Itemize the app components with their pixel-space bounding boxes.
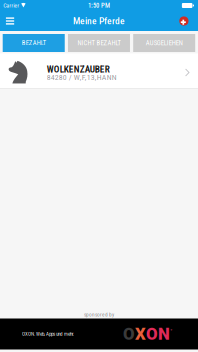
button[interactable]: Menu xyxy=(0,12,21,30)
staticText: BEZAHLT xyxy=(22,39,46,47)
staticText: AUSGELIEHEN xyxy=(146,39,183,47)
staticText: Carrier xyxy=(3,2,19,9)
staticText: NICHT BEZAHLT xyxy=(77,39,120,47)
staticText: ° xyxy=(170,328,172,334)
staticText: 1:50 PM xyxy=(88,2,110,9)
button[interactable]: Add horse xyxy=(174,12,198,30)
button[interactable]: OXON. Web, Apps und mehr. xyxy=(0,318,198,349)
staticText: N xyxy=(158,324,170,344)
staticText: sponsored by xyxy=(84,312,114,318)
staticText: OXON. Web, Apps und mehr. xyxy=(22,331,74,337)
staticText: X xyxy=(135,324,146,344)
button[interactable]: AUSGELIEHEN xyxy=(133,34,195,52)
staticText: O xyxy=(146,324,158,344)
staticText: 84280 / W,F,13,HANN xyxy=(47,73,117,82)
staticText: WOLKENZAUBER xyxy=(47,64,110,75)
button[interactable]: NICHT BEZAHLT xyxy=(68,34,130,52)
button[interactable]: WOLKENZAUBER xyxy=(0,53,198,88)
button[interactable]: BEZAHLT xyxy=(3,34,65,52)
staticText: Meine Pferde xyxy=(73,15,125,27)
staticText: O xyxy=(123,324,135,344)
